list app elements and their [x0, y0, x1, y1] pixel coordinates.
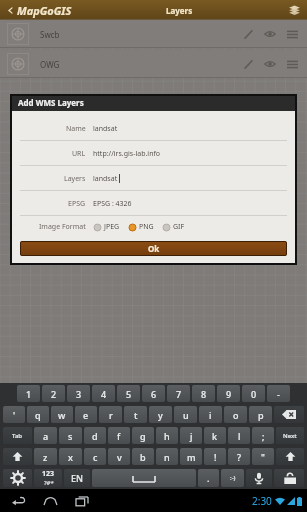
button[interactable]: a: [34, 427, 57, 444]
button[interactable]: 2: [42, 385, 65, 402]
button[interactable]: w: [51, 406, 73, 423]
button[interactable]: q: [27, 406, 49, 423]
staticText: 2:30: [252, 494, 272, 508]
button[interactable]: Shift: [3, 448, 32, 465]
button[interactable]: j: [180, 427, 202, 444]
staticText: f: [117, 430, 121, 442]
staticText: Layers: [166, 5, 193, 16]
button[interactable]: Keyboard settings: [3, 469, 32, 487]
button[interactable]: s: [59, 427, 82, 444]
button[interactable]: Edit Swcb: [237, 23, 259, 45]
button[interactable]: l: [228, 427, 250, 444]
button[interactable]: y: [149, 406, 172, 423]
button[interactable]: !: [204, 448, 226, 465]
staticText: i: [209, 409, 212, 421]
staticText: Ok: [148, 243, 160, 254]
button[interactable]: v: [108, 448, 130, 465]
button[interactable]: b: [132, 448, 154, 465]
staticText: a: [43, 430, 49, 442]
button[interactable]: Space: [92, 469, 196, 487]
button[interactable]: k: [204, 427, 226, 444]
button[interactable]: g: [132, 427, 154, 444]
button[interactable]: http://irs.gis-lab.info: [93, 141, 287, 166]
button[interactable]: Recent apps: [70, 489, 94, 512]
button[interactable]: Next: [276, 427, 304, 444]
button[interactable]: x: [59, 448, 82, 465]
staticText: v: [117, 451, 122, 463]
button[interactable]: MapGoGIS: [4, 1, 75, 20]
button[interactable]: ;: [252, 427, 274, 444]
button[interactable]: 8: [192, 385, 215, 402]
button[interactable]: Toggle visibility OWG: [259, 53, 281, 75]
staticText: PNG: [139, 222, 154, 232]
button[interactable]: Swcb: [0, 20, 307, 48]
button[interactable]: ": [252, 448, 274, 465]
button[interactable]: EN: [64, 469, 90, 487]
button[interactable]: ?: [228, 448, 250, 465]
staticText: GIF: [173, 222, 185, 232]
button[interactable]: z: [34, 448, 57, 465]
button[interactable]: 1: [17, 385, 40, 402]
button[interactable]: d: [84, 427, 106, 444]
button[interactable]: 4: [92, 385, 115, 402]
staticText: o: [233, 409, 239, 421]
staticText: .: [207, 472, 210, 484]
button[interactable]: 5: [117, 385, 140, 402]
button[interactable]: m: [180, 448, 202, 465]
button[interactable]: Voice input: [246, 469, 272, 487]
button[interactable]: 7: [167, 385, 190, 402]
staticText: EPSG: [68, 199, 86, 209]
staticText: g: [140, 430, 146, 442]
button[interactable]: Shift: [276, 448, 304, 465]
button[interactable]: i: [199, 406, 222, 423]
staticText: 1: [26, 388, 32, 400]
staticText: EN: [71, 472, 83, 484]
staticText: Swcb: [40, 29, 60, 40]
button[interactable]: r: [99, 406, 122, 423]
button[interactable]: 9: [217, 385, 240, 402]
button[interactable]: c: [84, 448, 106, 465]
button[interactable]: landsat: [93, 116, 287, 141]
staticText: k: [212, 430, 218, 442]
staticText: 0: [251, 388, 257, 400]
button[interactable]: 0: [242, 385, 265, 402]
staticText: d: [92, 430, 98, 442]
button[interactable]: Attach: [274, 469, 304, 487]
button[interactable]: n: [156, 448, 178, 465]
button[interactable]: Reorder OWG: [281, 53, 303, 75]
button[interactable]: o: [224, 406, 247, 423]
button[interactable]: Toggle visibility Swcb: [259, 23, 281, 45]
button[interactable]: Reorder Swcb: [281, 23, 303, 45]
staticText: u: [183, 409, 189, 421]
button[interactable]: Home: [38, 489, 62, 512]
button[interactable]: OWG: [0, 50, 307, 78]
button[interactable]: JPEG: [91, 220, 123, 234]
button[interactable]: Ok: [20, 241, 287, 256]
button[interactable]: f: [108, 427, 130, 444]
button[interactable]: :-): [221, 469, 244, 487]
button[interactable]: 3: [67, 385, 90, 402]
button[interactable]: Backspace: [274, 406, 304, 423]
button[interactable]: Back: [6, 489, 30, 512]
button[interactable]: Edit OWG: [237, 53, 259, 75]
button[interactable]: .: [198, 469, 219, 487]
button[interactable]: u: [174, 406, 197, 423]
button[interactable]: t: [124, 406, 147, 423]
button[interactable]: 6: [142, 385, 165, 402]
staticText: w: [58, 409, 66, 421]
button[interactable]: Add layer: [284, 0, 304, 20]
button[interactable]: -: [267, 385, 290, 402]
button[interactable]: 123: [34, 469, 62, 487]
button[interactable]: GIF: [160, 220, 188, 234]
button[interactable]: h: [156, 427, 178, 444]
button[interactable]: e: [75, 406, 97, 423]
button[interactable]: Status: [252, 494, 302, 508]
button[interactable]: EPSG : 4326: [93, 191, 287, 216]
staticText: 5: [126, 388, 132, 400]
button[interactable]: landsat: [93, 166, 287, 191]
button[interactable]: ': [3, 406, 25, 423]
button[interactable]: PNG: [126, 220, 157, 234]
staticText: ?: [237, 451, 242, 463]
button[interactable]: Tab: [3, 427, 32, 444]
button[interactable]: p: [249, 406, 272, 423]
